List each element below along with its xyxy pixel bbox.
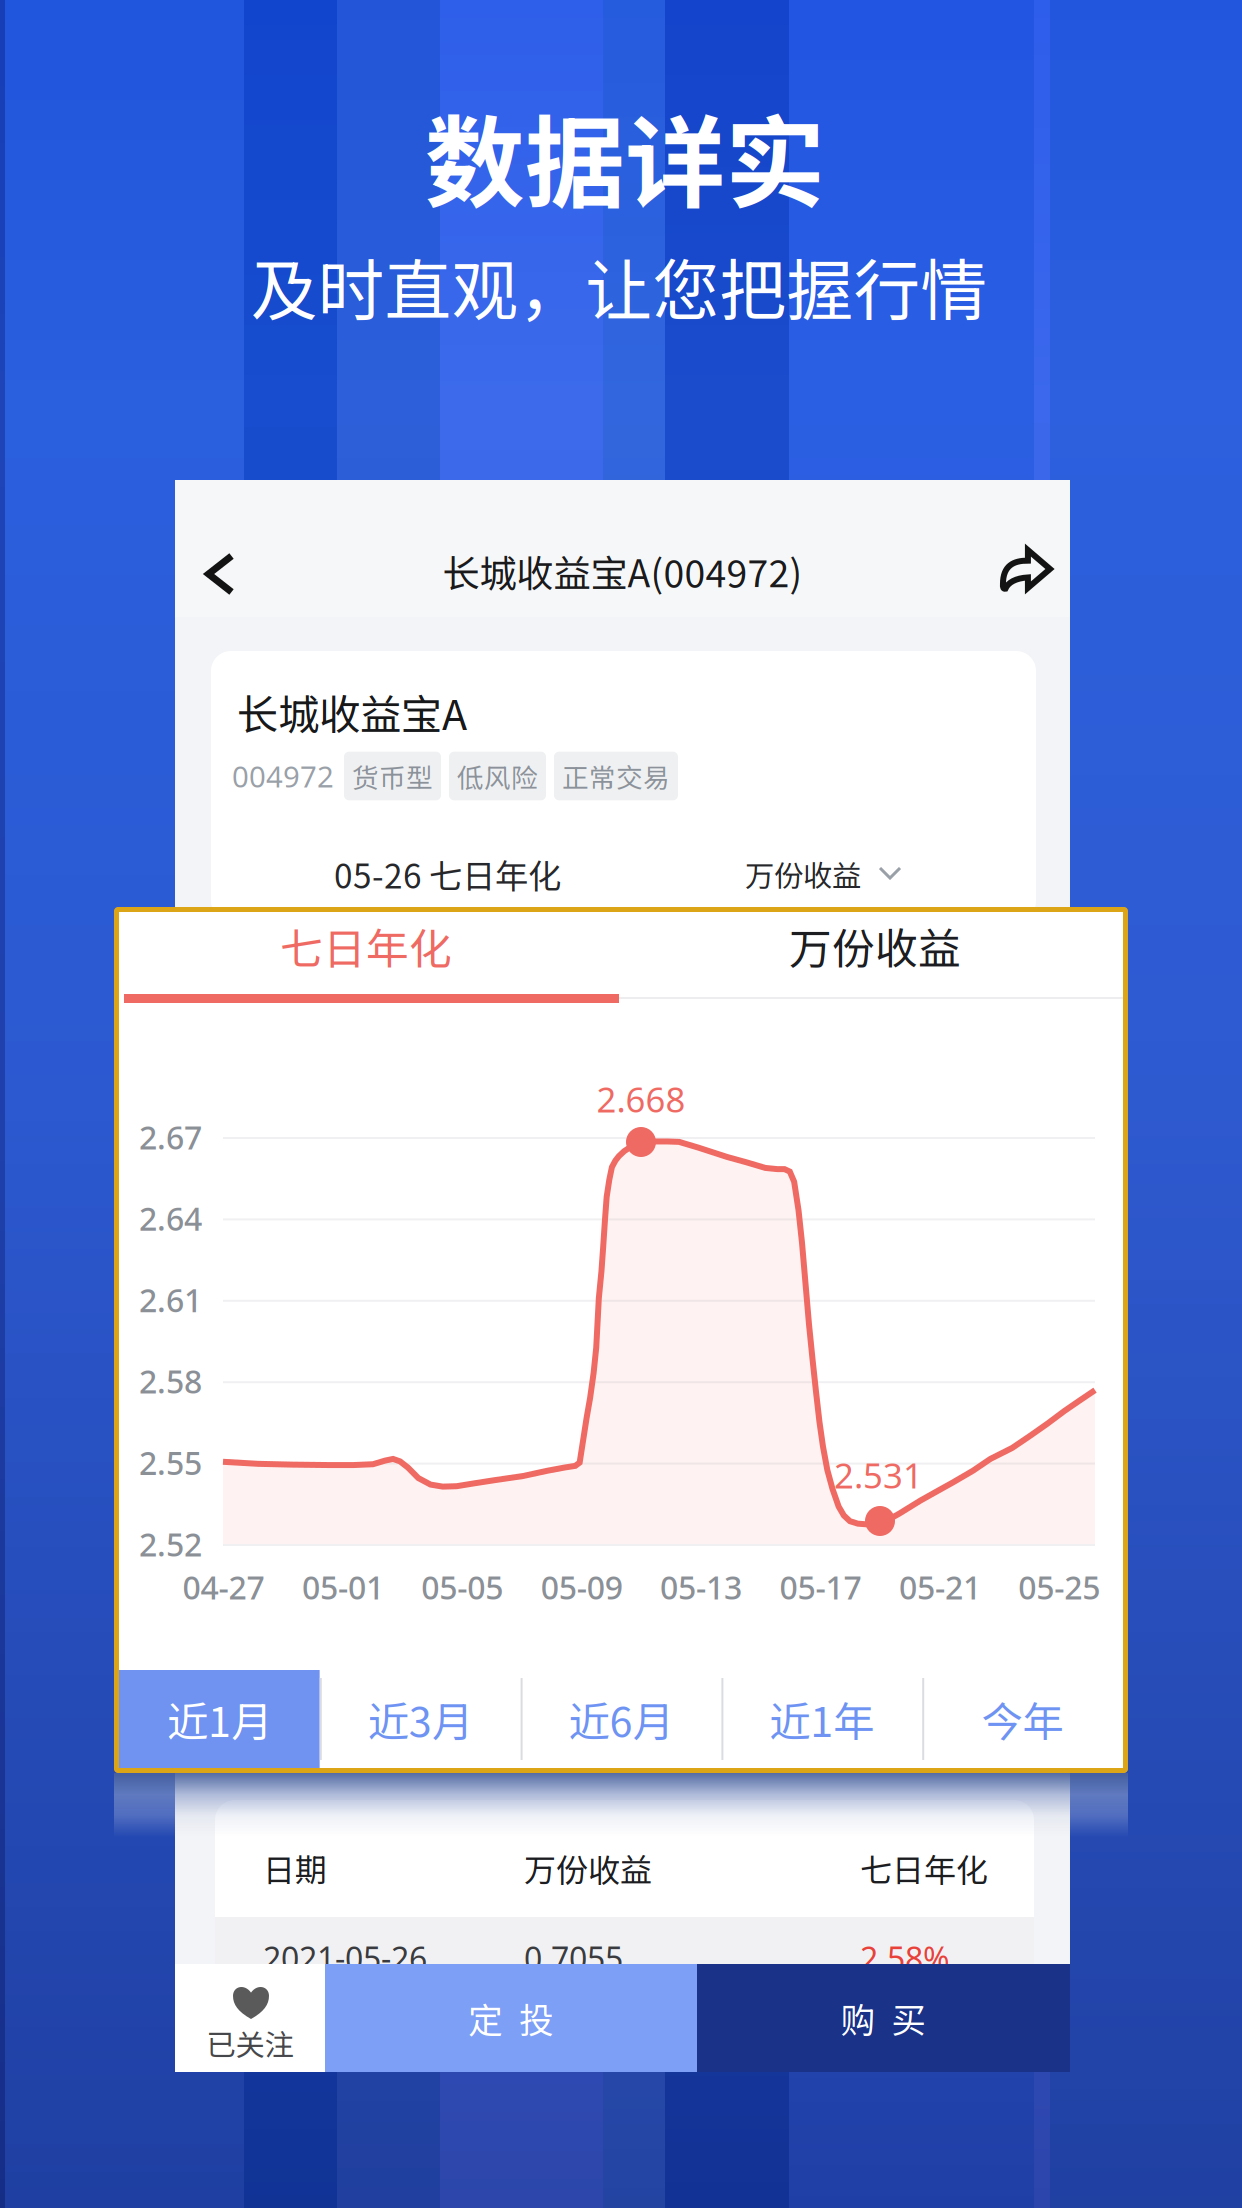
staticText: 05-17 — [779, 1565, 861, 1609]
staticText: 已关注 — [206, 2022, 293, 2064]
staticText: 正常交易 — [562, 757, 670, 795]
button[interactable]: 万份收益 — [625, 902, 1125, 990]
staticText: 及时直观，让您把握行情 — [250, 238, 987, 334]
staticText: 货币型 — [352, 757, 433, 795]
staticText: 04-27 — [182, 1565, 264, 1609]
staticText: 定 投 — [468, 1993, 554, 2043]
staticText: 今年 — [982, 1689, 1064, 1749]
staticText: 05-05 — [421, 1565, 503, 1609]
staticText: 万份收益 — [524, 1845, 652, 1891]
staticText: 2.52 — [139, 1522, 202, 1566]
staticText: 2021-05-26 — [263, 1936, 427, 1980]
button[interactable]: 购 买 — [697, 1964, 1070, 2072]
staticText: 05-26 七日年化 — [334, 850, 561, 898]
staticText: 2.61 — [139, 1278, 202, 1322]
staticText: 长城收益宝A — [237, 682, 467, 742]
staticText: 004972 — [232, 756, 334, 796]
button[interactable]: Back — [190, 545, 250, 603]
button[interactable]: 近3月 — [320, 1670, 521, 1768]
staticText: 05-13 — [660, 1565, 742, 1609]
button[interactable]: 近1年 — [721, 1670, 922, 1768]
staticText: 2.55 — [139, 1441, 202, 1484]
staticText: 2.531 — [834, 1451, 923, 1499]
staticText: 长城收益宝A(004972) — [442, 544, 802, 598]
staticText: 低风险 — [457, 757, 538, 795]
staticText: 万份收益 — [789, 915, 961, 977]
staticText: 购 买 — [840, 1993, 926, 2043]
button[interactable]: 定 投 — [325, 1964, 697, 2072]
staticText: 近1月 — [167, 1689, 272, 1749]
staticText: 万份收益 — [745, 853, 861, 895]
button[interactable]: Share — [986, 542, 1066, 596]
staticText: 日期 — [263, 1845, 327, 1891]
staticText: 近6月 — [568, 1689, 673, 1749]
staticText: 0.7055 — [524, 1936, 623, 1980]
staticText: 七日年化 — [860, 1845, 988, 1891]
staticText: 05-21 — [899, 1565, 981, 1609]
staticText: 近1年 — [769, 1689, 874, 1749]
staticText: 05-25 — [1018, 1565, 1100, 1609]
staticText: 2.58% — [860, 1936, 950, 1980]
staticText: 数据详实 — [425, 84, 825, 228]
staticText: 2.668 — [596, 1075, 685, 1123]
staticText: 七日年化 — [280, 915, 452, 977]
button[interactable]: 今年 — [922, 1670, 1123, 1768]
staticText: 2.58 — [139, 1359, 202, 1403]
button[interactable]: 七日年化 — [116, 902, 616, 990]
button[interactable]: 已关注 — [175, 1964, 325, 2072]
staticText: 2.67 — [139, 1115, 202, 1159]
staticText: 2.64 — [139, 1197, 202, 1240]
staticText: 05-01 — [302, 1565, 384, 1609]
staticText: 05-09 — [541, 1565, 623, 1609]
staticText: 近3月 — [368, 1689, 473, 1749]
button[interactable]: 近6月 — [521, 1670, 721, 1768]
button[interactable]: 近1月 — [119, 1670, 320, 1768]
